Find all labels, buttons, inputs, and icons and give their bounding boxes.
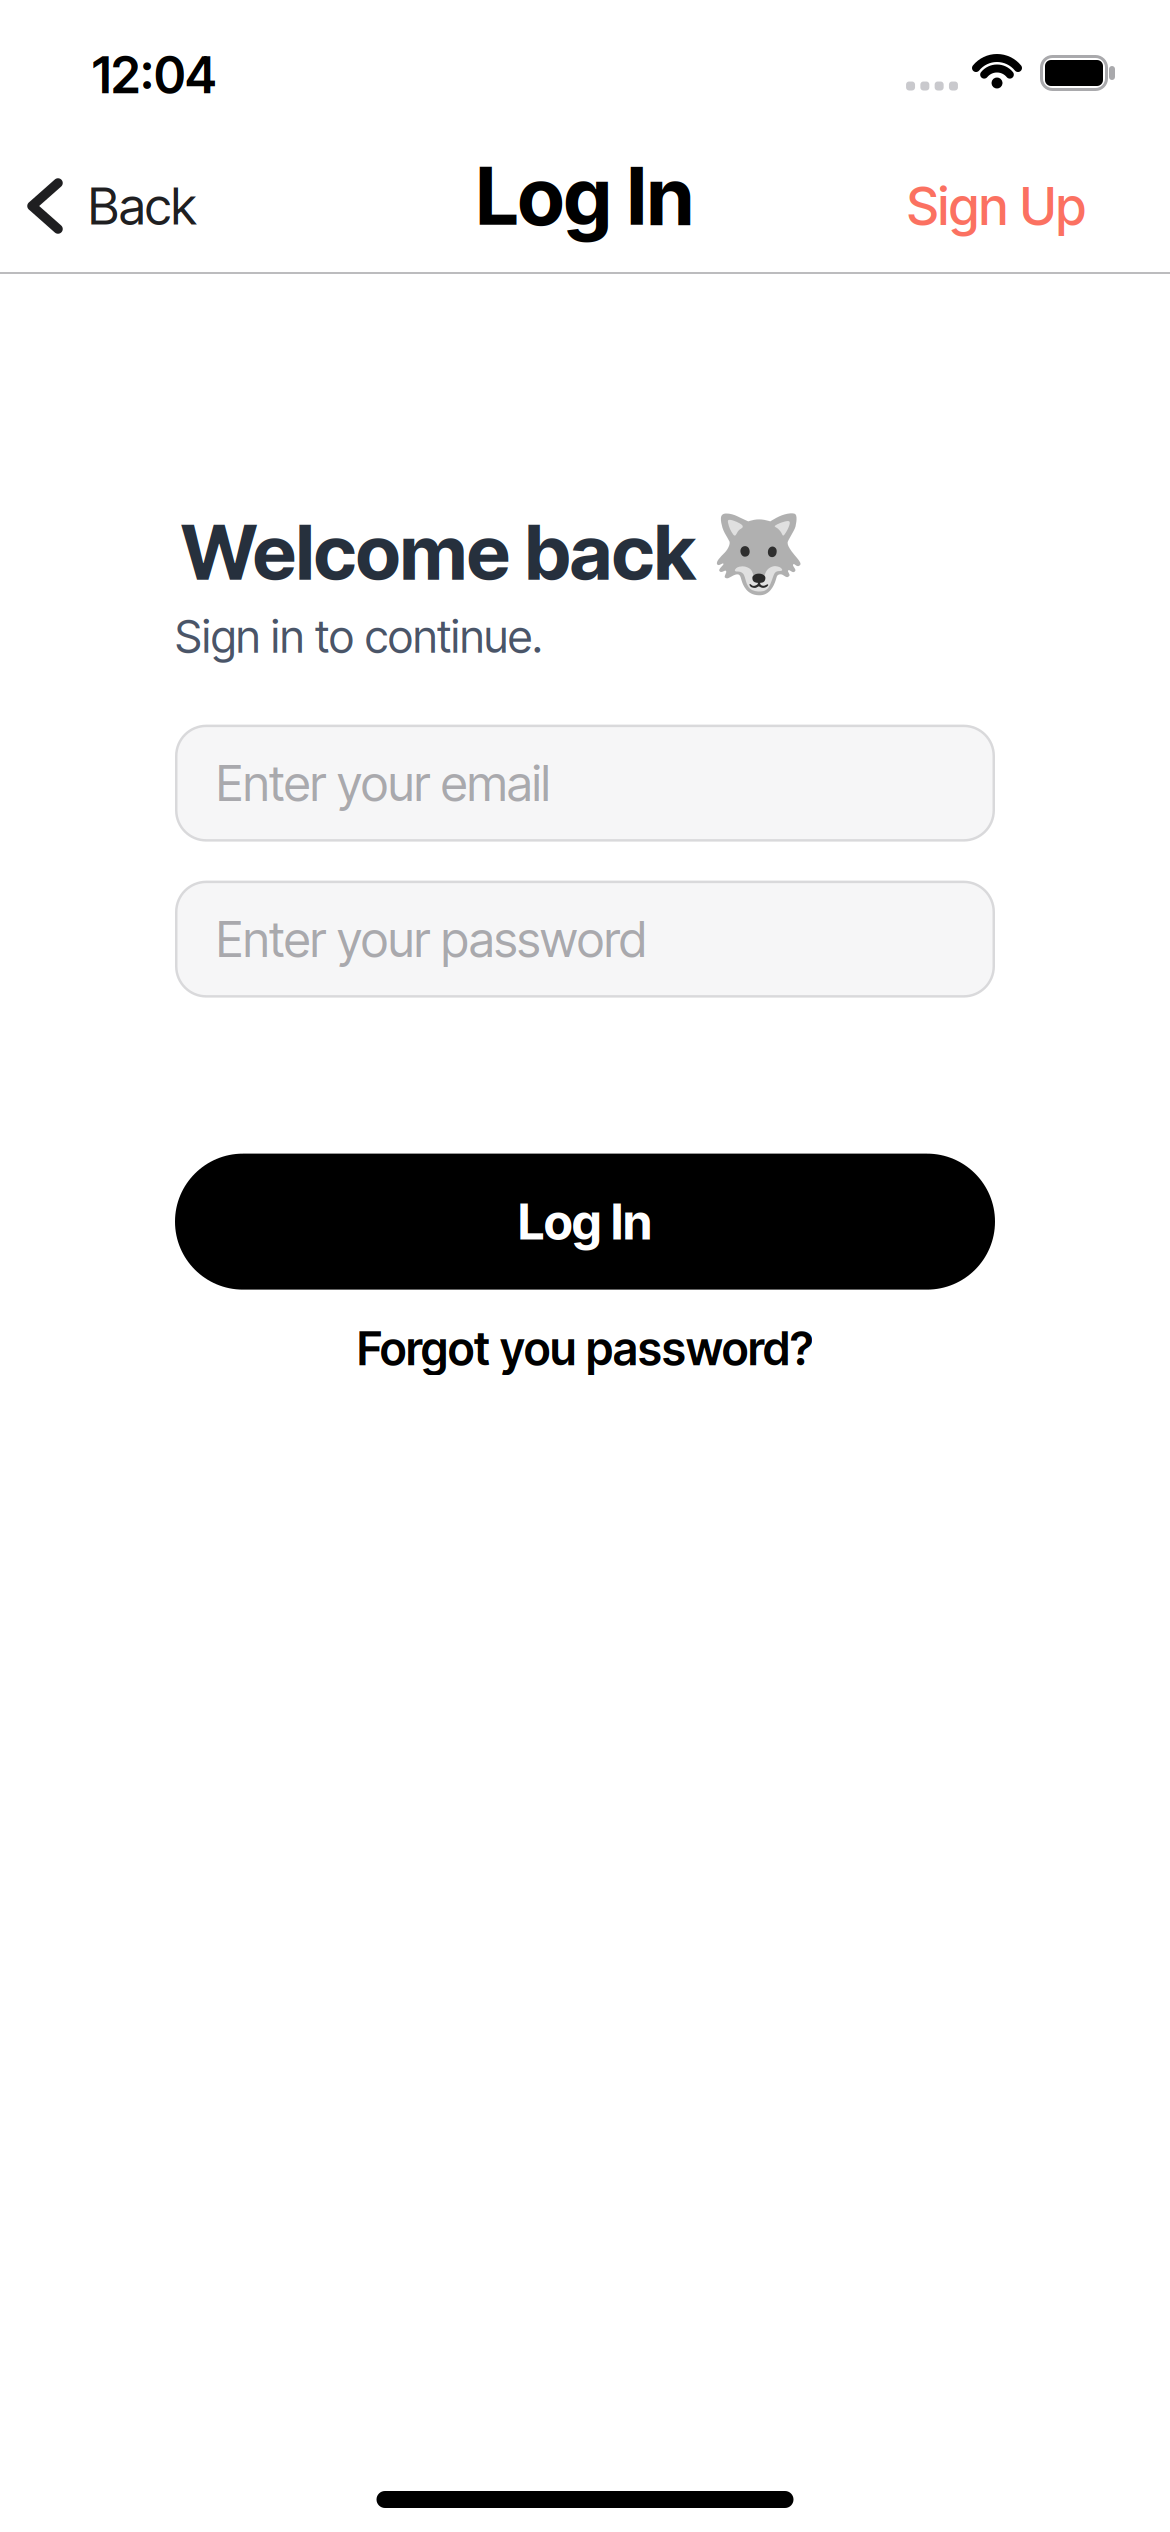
staticText: Sign Up — [907, 174, 1086, 237]
button[interactable]: Forgot you password? — [175, 1321, 995, 1376]
staticText: Back — [88, 175, 196, 237]
button[interactable]: Enter your password — [175, 881, 995, 998]
staticText: 12:04 — [92, 45, 216, 105]
staticText: Enter your email — [216, 753, 550, 813]
staticText: Log In — [518, 1192, 652, 1251]
staticText: Enter your password — [216, 909, 647, 969]
staticText: Forgot you password? — [357, 1321, 813, 1376]
button[interactable]: Back — [0, 175, 196, 237]
staticText: Sign in to continue. — [175, 609, 543, 664]
button[interactable]: Sign Up — [907, 174, 1170, 237]
button[interactable]: Log In — [175, 1154, 995, 1290]
staticText: Welcome back 🐺 — [181, 506, 806, 598]
staticText: Log In — [476, 148, 694, 244]
button[interactable]: Enter your email — [175, 725, 995, 842]
